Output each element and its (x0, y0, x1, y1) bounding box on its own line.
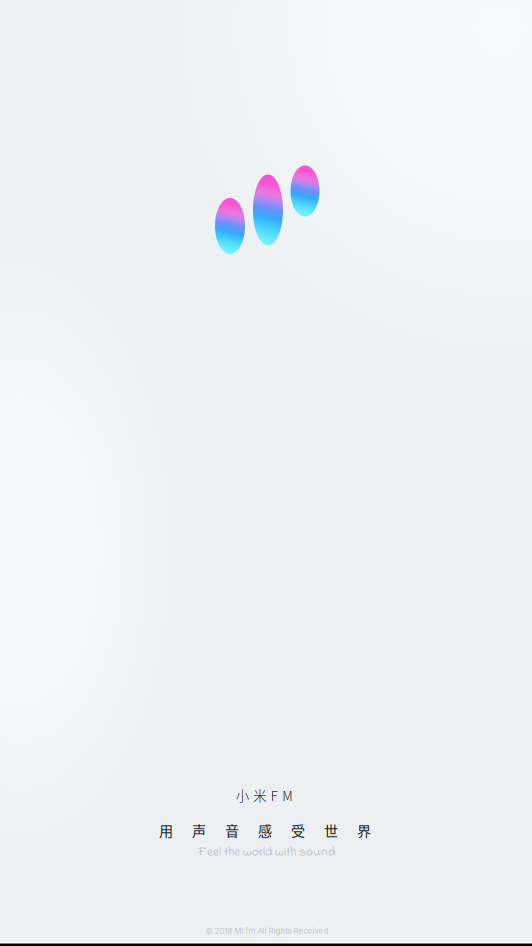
staticText: 米 (253, 785, 266, 805)
staticText: 用 (159, 820, 173, 840)
staticText: M (282, 785, 292, 805)
staticText: 世 (324, 820, 338, 840)
staticText: 受 (291, 820, 305, 840)
staticText: © 2018 MI.fm All Rights Received (205, 926, 328, 936)
staticText: 小 (236, 785, 249, 805)
staticText: 声 (192, 820, 206, 840)
staticText: 界 (357, 820, 371, 840)
staticText: 音 (225, 820, 239, 840)
staticText: F (271, 785, 278, 805)
staticText: 感 (258, 820, 272, 840)
staticText: Feel the world with sound (198, 843, 335, 862)
